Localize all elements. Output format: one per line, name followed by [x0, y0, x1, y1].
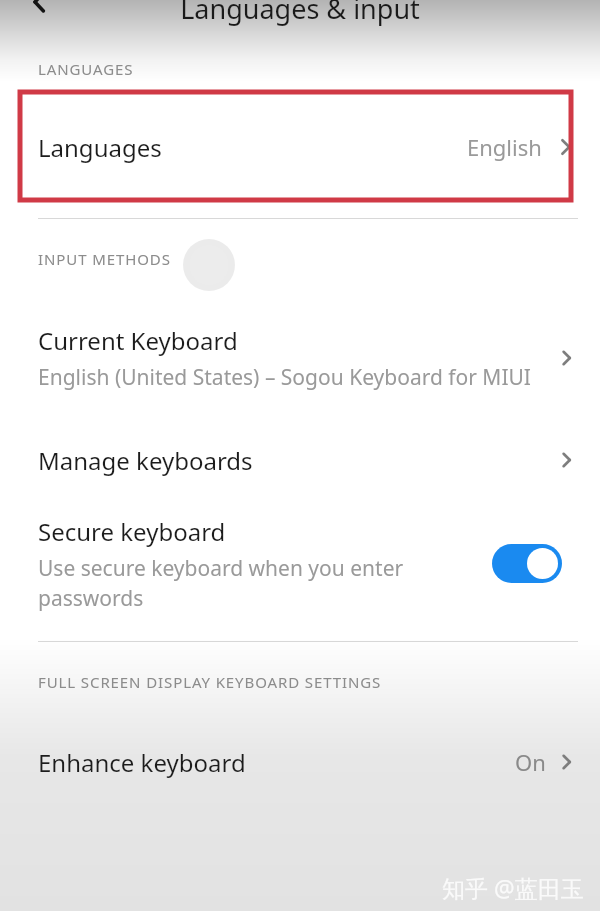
button[interactable]: Languages — [0, 92, 600, 202]
button[interactable]: Enhance keyboard — [0, 722, 600, 802]
staticText: 知乎 @蓝田玉 — [442, 872, 584, 903]
button[interactable]: Secure keyboard toggle, on — [492, 544, 562, 583]
staticText: English — [467, 132, 542, 162]
staticText: INPUT METHODS — [38, 249, 171, 269]
staticText: FULL SCREEN DISPLAY KEYBOARD SETTINGS — [38, 672, 382, 692]
button[interactable]: Manage keyboards — [0, 417, 600, 503]
staticText: Current Keyboard — [38, 324, 238, 357]
staticText: On — [515, 747, 546, 777]
staticText: Languages & input — [180, 0, 420, 27]
staticText: Secure keyboard — [38, 515, 226, 548]
staticText: Manage keyboards — [38, 444, 253, 477]
staticText: Use secure keyboard when you enter passw… — [38, 554, 482, 612]
staticText: English (United States) – Sogou Keyboard… — [38, 363, 531, 392]
staticText: Languages — [38, 131, 162, 164]
staticText: LANGUAGES — [38, 59, 134, 79]
button[interactable]: Secure keyboard — [0, 503, 600, 623]
button[interactable]: Current Keyboard — [0, 299, 600, 417]
button[interactable]: Back — [26, 0, 56, 17]
staticText: Enhance keyboard — [38, 746, 246, 779]
